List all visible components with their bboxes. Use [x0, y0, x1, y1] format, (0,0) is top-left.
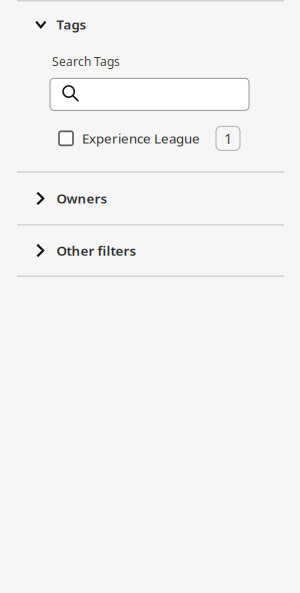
staticText: Owners	[56, 190, 107, 207]
staticText: Tags	[57, 15, 87, 33]
button[interactable]: 1	[216, 126, 300, 150]
button[interactable]: Owners	[0, 173, 300, 224]
staticText: Experience League	[82, 129, 200, 147]
button[interactable]: Experience League	[0, 126, 200, 150]
staticText: Other filters	[56, 242, 136, 259]
button[interactable]: Other filters	[0, 225, 300, 275]
button[interactable]: Tags	[0, 1, 300, 47]
staticText: 1	[224, 129, 232, 148]
staticText: Search Tags	[52, 53, 120, 69]
